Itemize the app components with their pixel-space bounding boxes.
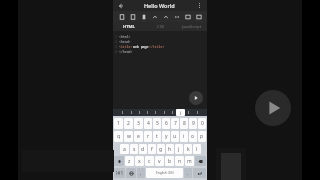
button[interactable]: c [145, 156, 154, 166]
button[interactable]: r [144, 131, 152, 142]
staticText: 1 [117, 120, 120, 127]
button[interactable]: Tool 6 [172, 12, 181, 21]
staticText: <html> [119, 35, 131, 39]
staticText: m [187, 158, 192, 165]
staticText: 9 [192, 120, 195, 127]
staticText: e [137, 133, 140, 140]
button[interactable]: w [124, 131, 133, 142]
button[interactable]: y [162, 131, 170, 142]
button[interactable]: Play [255, 90, 291, 126]
button[interactable]: v [155, 156, 164, 166]
button[interactable]: , [137, 168, 145, 178]
button[interactable]: 8 [180, 118, 188, 129]
staticText: i [183, 133, 185, 140]
staticText: 6 [165, 120, 168, 127]
button[interactable]: 3 [134, 118, 143, 129]
staticText: a [123, 146, 126, 153]
button[interactable]: t [153, 131, 161, 142]
button[interactable]: 0 [198, 118, 206, 129]
button[interactable]: 1 [114, 118, 123, 129]
staticText: h [168, 146, 172, 153]
staticText: 1 [115, 35, 117, 39]
staticText: f [151, 146, 153, 153]
button[interactable]: s [130, 144, 138, 154]
staticText: 2 [115, 40, 117, 44]
staticText: , [140, 170, 142, 177]
button[interactable]: Tool 4 [150, 12, 159, 21]
button[interactable]: JavaScript [176, 22, 207, 31]
button[interactable]: e [134, 131, 143, 142]
button[interactable]: h [166, 144, 174, 154]
staticText: c [148, 158, 151, 165]
button[interactable]: m [185, 156, 194, 166]
button[interactable]: u [171, 131, 179, 142]
button[interactable]: 2 [124, 118, 133, 129]
staticText: o [191, 133, 195, 140]
staticText: 4 [115, 50, 117, 54]
button[interactable]: o [189, 131, 197, 142]
button[interactable]: !#1 [114, 168, 125, 178]
staticText: Hello World [144, 2, 175, 9]
button[interactable]: a [120, 144, 129, 154]
staticText: b [168, 158, 172, 165]
staticText: 8 [183, 120, 186, 127]
button[interactable]: . [184, 168, 192, 178]
staticText: t [156, 133, 158, 140]
button[interactable]: globe [126, 168, 136, 178]
staticText: y [165, 133, 168, 140]
button[interactable]: shift [114, 156, 124, 166]
button[interactable]: Tool 5 [161, 12, 170, 21]
button[interactable]: d [139, 144, 147, 154]
staticText: g [159, 146, 163, 153]
button[interactable]: 9 [189, 118, 197, 129]
button[interactable]: enter [193, 168, 206, 178]
staticText: 2 [127, 120, 130, 127]
button[interactable]: Tool 7 [183, 12, 192, 21]
button[interactable]: Back [116, 1, 125, 10]
button[interactable]: 4 [144, 118, 152, 129]
staticText: </head> [119, 50, 133, 54]
staticText: HTML [123, 24, 135, 30]
button[interactable]: English (US) [146, 168, 183, 178]
staticText: 3 [137, 120, 140, 127]
staticText: r [147, 133, 150, 140]
staticText: <title> [119, 45, 133, 49]
button[interactable]: n [175, 156, 184, 166]
staticText: d [141, 146, 145, 153]
button[interactable]: CSS [145, 22, 176, 31]
button[interactable]: q [114, 131, 123, 142]
button[interactable]: Tool 2 [128, 12, 137, 21]
button[interactable]: Tool 1 [117, 12, 126, 21]
button[interactable]: f [148, 144, 156, 154]
button[interactable]: b [165, 156, 174, 166]
button[interactable]: 6 [162, 118, 170, 129]
staticText: s [133, 146, 136, 153]
staticText: CSS [157, 24, 165, 30]
staticText: 4 [147, 120, 150, 127]
button[interactable]: z [125, 156, 134, 166]
button[interactable]: k [184, 144, 192, 154]
button[interactable]: More options [195, 1, 204, 10]
staticText: web page [133, 45, 149, 49]
staticText: k [187, 146, 190, 153]
button[interactable]: Tool 3 [139, 12, 148, 21]
button[interactable]: i [180, 131, 188, 142]
button[interactable]: l [193, 144, 201, 154]
button[interactable]: Run [189, 91, 203, 105]
button[interactable]: g [157, 144, 165, 154]
button[interactable]: Tool 8 [194, 12, 203, 21]
staticText: n [178, 158, 182, 165]
button[interactable]: j [175, 144, 183, 154]
button[interactable]: HTML [113, 22, 145, 31]
button[interactable]: x [135, 156, 144, 166]
staticText: <head> [119, 40, 131, 44]
button[interactable]: 7 [171, 118, 179, 129]
button[interactable]: del [195, 156, 206, 166]
staticText: JavaScript [182, 24, 202, 30]
staticText: z [128, 158, 131, 165]
staticText: w [127, 133, 131, 140]
staticText: l [196, 146, 198, 153]
button[interactable]: 5 [153, 118, 161, 129]
button[interactable]: p [198, 131, 206, 142]
staticText: 7 [174, 120, 177, 127]
